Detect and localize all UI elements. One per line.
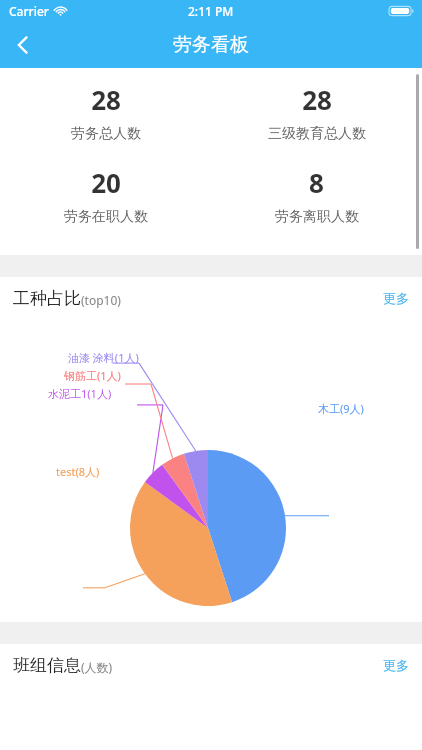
staticText: 更多: [383, 290, 409, 306]
staticText: Carrier: [9, 3, 49, 19]
staticText: 劳务看板: [173, 33, 249, 57]
button[interactable]: 更多: [370, 649, 422, 681]
button[interactable]: 20: [0, 165, 211, 226]
staticText: (top10): [81, 292, 121, 308]
button[interactable]: 28: [0, 82, 211, 143]
staticText: 8: [309, 165, 324, 200]
staticText: 工种占比: [13, 288, 81, 309]
staticText: 20: [91, 165, 121, 200]
button[interactable]: Back: [0, 22, 46, 68]
staticText: 劳务总人数: [71, 125, 141, 143]
staticText: 三级教育总人数: [268, 125, 366, 143]
button[interactable]: 28: [211, 82, 422, 143]
staticText: 2:11 PM: [188, 3, 234, 19]
staticText: 更多: [383, 657, 409, 673]
staticText: 班组信息: [13, 655, 81, 676]
staticText: 木工(9人): [318, 401, 364, 416]
staticText: 28: [91, 82, 121, 117]
button[interactable]: 更多: [370, 282, 422, 314]
staticText: 钢筋工(1人): [64, 368, 121, 383]
staticText: 水泥工1(1人): [48, 386, 112, 401]
staticText: 28: [302, 82, 332, 117]
staticText: 劳务离职人数: [275, 208, 359, 226]
staticText: 劳务在职人数: [64, 208, 148, 226]
button[interactable]: 8: [211, 165, 422, 226]
staticText: test(8人): [56, 464, 100, 479]
staticText: 油漆 涂料(1人): [68, 350, 139, 365]
staticText: (人数): [81, 659, 113, 675]
